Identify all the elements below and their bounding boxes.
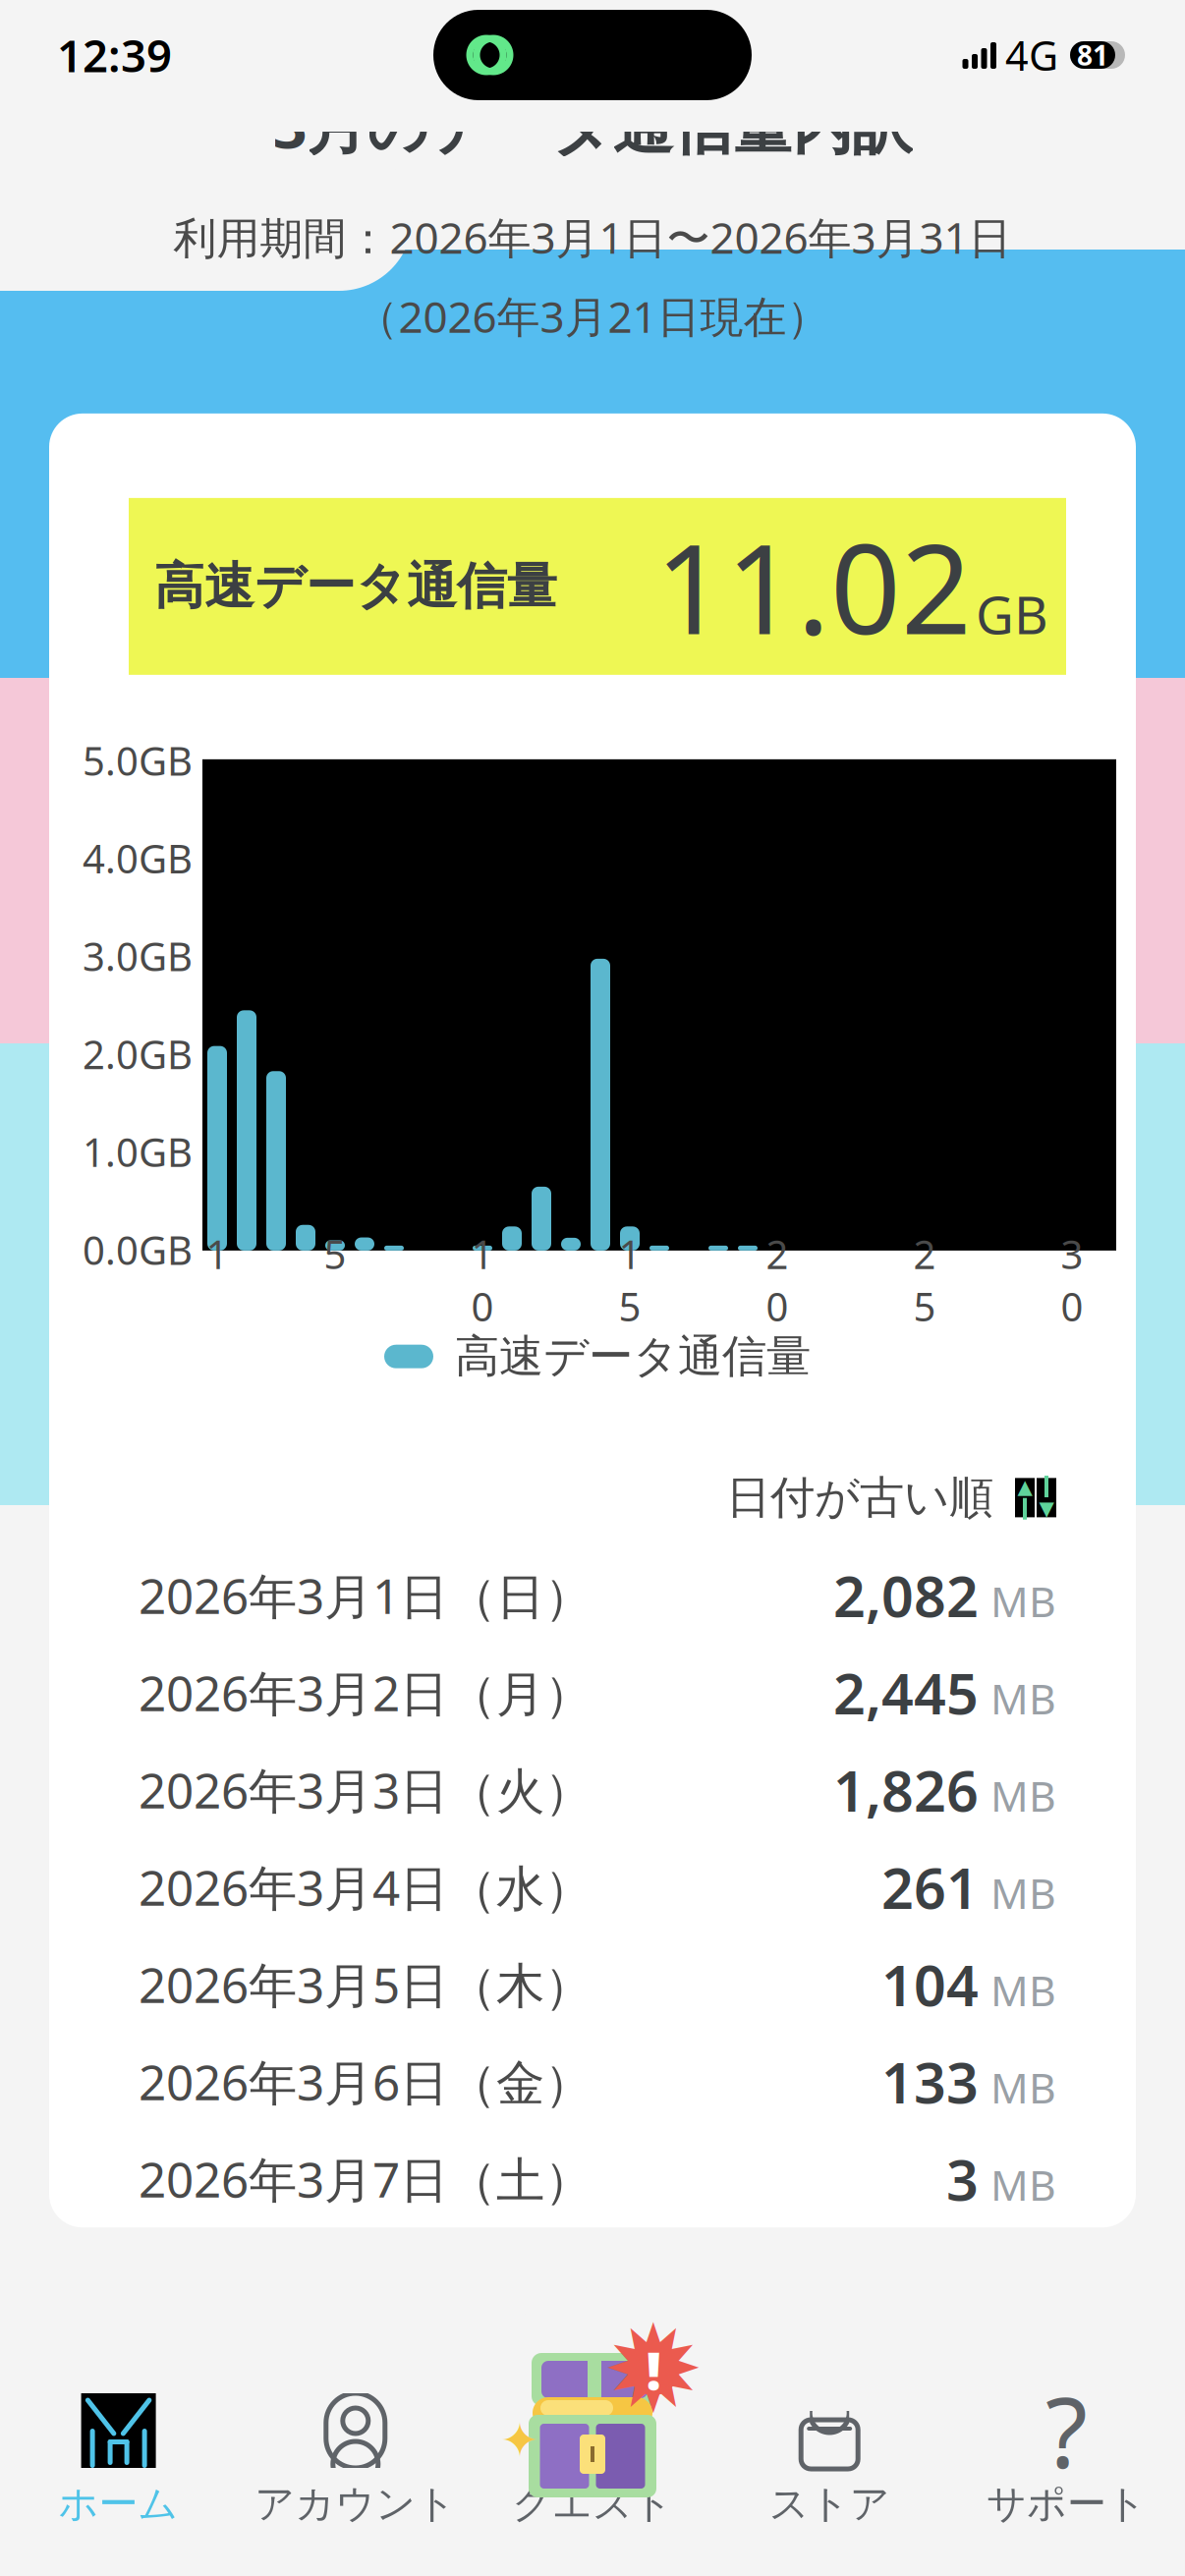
staticText xyxy=(713,1228,723,1280)
staticText xyxy=(419,1228,428,1280)
staticText xyxy=(743,1228,753,1280)
staticText: MB xyxy=(990,2157,1056,2212)
button[interactable]: ホーム xyxy=(0,2370,237,2538)
staticText: ✦ xyxy=(500,2414,539,2467)
staticText: 5.0GB xyxy=(83,734,193,786)
staticText xyxy=(595,1228,605,1280)
staticText: 1,826 xyxy=(833,1752,979,1827)
staticText: 4G xyxy=(1005,28,1058,82)
staticText: 11.02 xyxy=(655,505,972,668)
button[interactable]: 2026年3月4日（水） xyxy=(139,1838,1056,1936)
staticText: クエスト xyxy=(512,2480,673,2528)
staticText xyxy=(271,1228,281,1280)
staticText: アカウント xyxy=(255,2480,456,2528)
staticText: 20 xyxy=(766,1228,789,1332)
staticText: 133 xyxy=(881,2044,979,2119)
staticText: ! xyxy=(646,2335,661,2404)
button[interactable]: 日付が古い順 xyxy=(726,1462,1056,1533)
staticText xyxy=(301,1228,310,1280)
staticText: MB xyxy=(990,1865,1056,1921)
staticText xyxy=(389,1228,399,1280)
staticText: 高速データ通信量 xyxy=(455,1329,811,1384)
staticText xyxy=(684,1228,694,1280)
button[interactable]: 2026年3月7日（土） xyxy=(139,2130,1056,2227)
staticText: 2,082 xyxy=(833,1558,979,1633)
staticText: ? xyxy=(1045,2366,1088,2495)
staticText: 2026年3月6日（金） xyxy=(139,2049,592,2114)
staticText: 利用期間：2026年3月1日〜2026年3月31日 xyxy=(173,208,1012,266)
staticText: 2.0GB xyxy=(83,1028,193,1080)
staticText: 5 xyxy=(324,1228,346,1280)
staticText xyxy=(654,1228,664,1280)
staticText: 25 xyxy=(913,1228,936,1332)
staticText xyxy=(360,1228,369,1280)
staticText: GB xyxy=(976,579,1048,649)
staticText: 高速データ通信量 xyxy=(154,556,557,617)
button[interactable]: 2026年3月6日（金） xyxy=(139,2033,1056,2130)
staticText xyxy=(949,1228,959,1280)
staticText xyxy=(448,1228,458,1280)
staticText: MB xyxy=(990,1962,1056,2018)
staticText: 4.0GB xyxy=(83,832,193,884)
button[interactable]: 2026年3月3日（火） xyxy=(139,1741,1056,1838)
staticText: 2026年3月7日（土） xyxy=(139,2147,592,2211)
staticText: 2026年3月4日（水） xyxy=(139,1855,592,1919)
staticText xyxy=(242,1228,252,1280)
staticText: ホーム xyxy=(59,2480,178,2528)
button[interactable]: ストア xyxy=(711,2370,948,2538)
button[interactable]: 2026年3月5日（木） xyxy=(139,1936,1056,2033)
staticText: 2026年3月5日（木） xyxy=(139,1952,592,2016)
staticText: 2026年3月1日（日） xyxy=(139,1563,592,1627)
staticText: 1 xyxy=(206,1228,228,1280)
staticText: 2026年3月2日（月） xyxy=(139,1660,592,1725)
staticText xyxy=(861,1228,871,1280)
staticText: 12:39 xyxy=(57,25,172,85)
staticText: MB xyxy=(990,1768,1056,1823)
staticText: 2026年3月3日（火） xyxy=(139,1758,592,1822)
staticText: ストア xyxy=(769,2480,890,2528)
staticText xyxy=(1097,1228,1106,1280)
staticText: サポート xyxy=(986,2480,1147,2528)
staticText: 0.0GB xyxy=(83,1223,193,1276)
staticText: 81 xyxy=(1077,37,1108,73)
staticText: 3 xyxy=(946,2141,979,2216)
staticText xyxy=(802,1228,812,1280)
staticText: ▲ xyxy=(1017,1476,1032,1498)
staticText xyxy=(831,1228,841,1280)
staticText: 30 xyxy=(1061,1228,1083,1332)
staticText: 日付が古い順 xyxy=(726,1470,993,1525)
staticText: ▼ xyxy=(1039,1497,1054,1520)
staticText xyxy=(566,1228,576,1280)
staticText: 104 xyxy=(881,1947,979,2022)
staticText: ✹ xyxy=(603,2301,704,2438)
staticText xyxy=(1008,1228,1018,1280)
staticText: MB xyxy=(990,2059,1056,2115)
staticText xyxy=(1038,1228,1047,1280)
staticText: MB xyxy=(990,1573,1056,1629)
staticText: 3.0GB xyxy=(83,930,193,982)
staticText xyxy=(890,1228,900,1280)
button[interactable]: 2026年3月2日（月） xyxy=(139,1644,1056,1741)
button[interactable]: クエスト xyxy=(474,2370,711,2538)
staticText: 1.0GB xyxy=(83,1126,193,1178)
staticText xyxy=(507,1228,517,1280)
button[interactable]: 2026年3月1日（日） xyxy=(139,1547,1056,1644)
staticText xyxy=(536,1228,546,1280)
staticText: 15 xyxy=(619,1228,641,1332)
staticText: MB xyxy=(990,1670,1056,1726)
button[interactable]: アカウント xyxy=(237,2370,474,2538)
staticText: 3月のデータ通信量内訳 xyxy=(273,85,912,165)
staticText: 261 xyxy=(881,1850,979,1924)
staticText: 10 xyxy=(471,1228,494,1332)
staticText: 2,445 xyxy=(833,1655,979,1730)
staticText: （2026年3月21日現在） xyxy=(355,287,830,345)
button[interactable]: ? xyxy=(948,2370,1185,2538)
staticText xyxy=(979,1228,988,1280)
